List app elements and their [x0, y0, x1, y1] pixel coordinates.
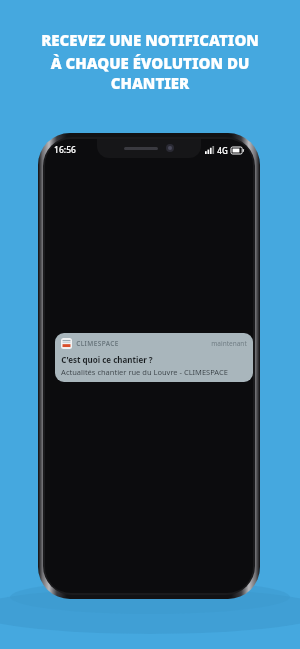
staticText: RECEVEZ UNE NOTIFICATION [41, 30, 259, 50]
other: Climespace app icon [61, 338, 72, 349]
staticText: 16:56 [54, 144, 76, 156]
staticText: maintenant [211, 339, 247, 348]
staticText: Actualités chantier rue du Louvre - CLIM… [61, 367, 228, 377]
button[interactable]: Climespace app icon [55, 333, 253, 382]
staticText: C'est quoi ce chantier ? [61, 354, 153, 365]
staticText: À CHAQUE ÉVOLUTION DU CHANTIER [10, 53, 290, 93]
staticText: 4G [217, 145, 228, 156]
staticText: CLIMESPACE [76, 339, 119, 348]
